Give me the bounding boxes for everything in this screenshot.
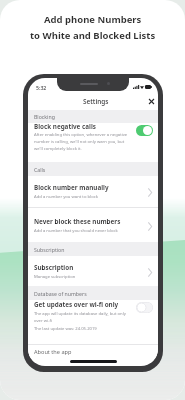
button[interactable]: Get updates over wi-fi only: [28, 300, 158, 344]
staticText: Add phone Numbers: [44, 13, 142, 26]
staticText: Block negative calls: [34, 122, 96, 131]
staticText: About the app: [34, 348, 72, 356]
staticText: Blocking: [34, 113, 55, 120]
button[interactable]: Close: [144, 94, 158, 108]
staticText: Subscription: [34, 246, 65, 253]
button[interactable]: Toggle: [136, 125, 153, 136]
staticText: Settings: [83, 97, 109, 106]
button[interactable]: Subscription: [28, 256, 158, 286]
button[interactable]: Toggle: [136, 302, 153, 313]
staticText: Block number manually: [34, 183, 109, 192]
button[interactable]: Block number manually: [28, 176, 158, 207]
button[interactable]: About the app: [28, 345, 158, 363]
staticText: Never block these numbers: [34, 217, 121, 226]
staticText: Calls: [34, 166, 46, 173]
staticText: Database of numbers: [34, 290, 87, 297]
button[interactable]: Block negative calls: [28, 123, 158, 162]
staticText: Add a number that you should never block: [34, 228, 118, 234]
staticText: Get updates over wi-fi only: [34, 300, 119, 309]
staticText: Add a number you want to block: [34, 194, 98, 200]
staticText: Manage subscription: [34, 274, 76, 280]
staticText: Subscription: [34, 263, 74, 272]
staticText: The app will update its database daily, …: [34, 311, 130, 323]
staticText: to White and Blocked Lists: [30, 29, 156, 42]
staticText: 5:32: [36, 84, 47, 91]
button[interactable]: Never block these numbers: [28, 208, 158, 242]
staticText: The last update was: 24.05.2019: [34, 326, 97, 332]
staticText: After enabling this option, whenever a n…: [34, 132, 130, 151]
